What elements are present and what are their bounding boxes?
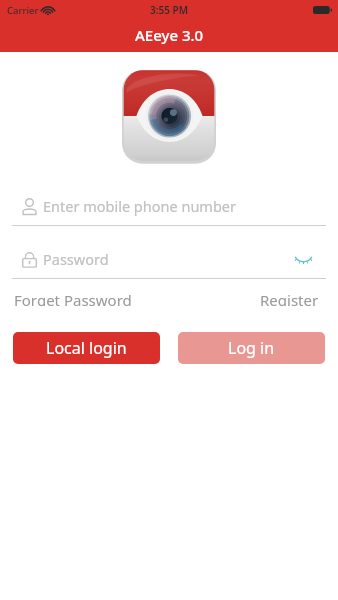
button[interactable]: Local login [13,332,160,364]
button[interactable]: Register [260,287,319,309]
button[interactable]: Show password [292,248,314,270]
staticText: 3:55 PM [150,3,188,17]
staticText: Local login [46,337,127,359]
staticText: Log in [228,337,275,359]
button[interactable]: Forget Password [14,287,132,309]
button[interactable]: Password [12,246,326,272]
staticText: Enter mobile phone number [43,196,236,216]
staticText: Register [260,290,319,306]
staticText: Password [43,249,109,269]
staticText: AEeye 3.0 [135,25,204,45]
button[interactable]: Log in [178,332,325,364]
staticText: Forget Password [14,290,132,306]
staticText: Carrier [7,4,39,17]
button[interactable]: Enter mobile phone number [12,193,326,219]
